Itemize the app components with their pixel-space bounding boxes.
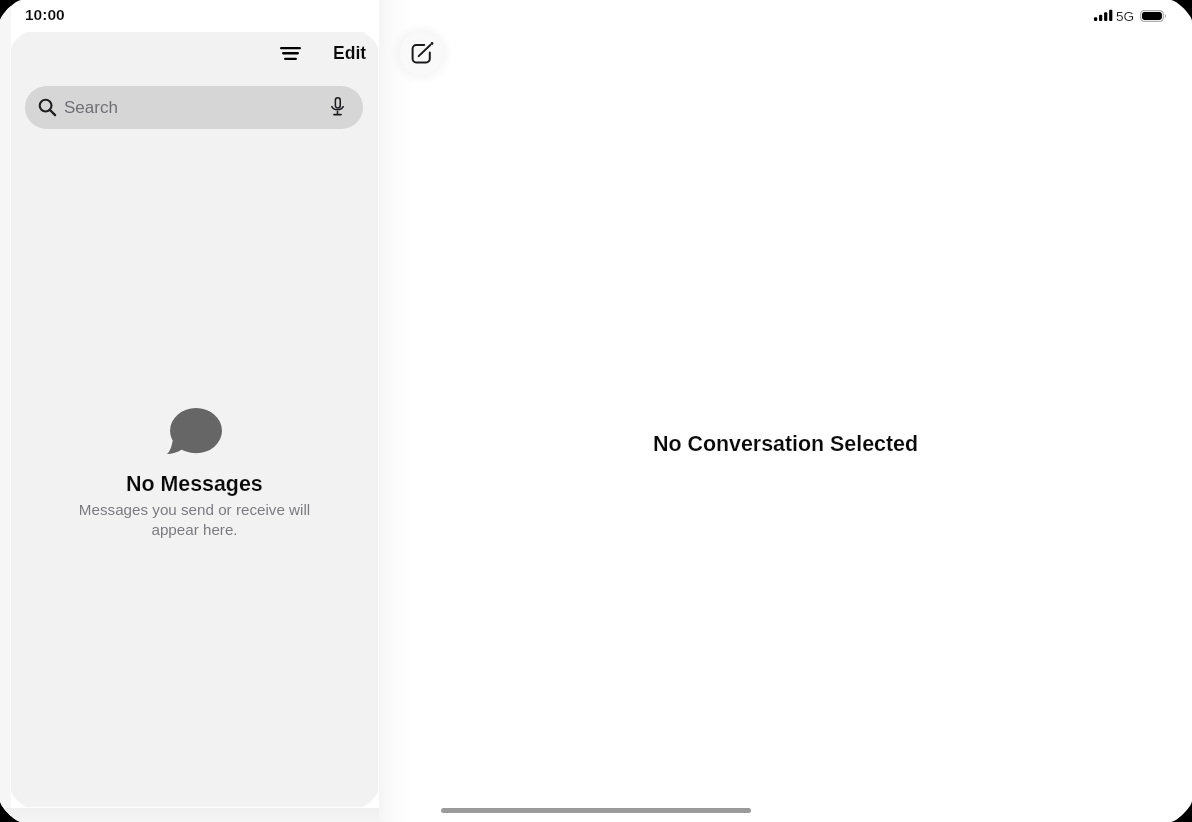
staticText: No Conversation Selected bbox=[653, 432, 919, 456]
button[interactable]: Edit bbox=[320, 37, 378, 69]
button[interactable]: Voice search bbox=[327, 95, 347, 117]
staticText: Search bbox=[64, 98, 118, 117]
button[interactable]: Filter bbox=[270, 37, 311, 69]
staticText: 10:00 bbox=[25, 6, 65, 23]
staticText: Edit bbox=[333, 43, 367, 63]
button[interactable]: Search bbox=[25, 86, 363, 129]
staticText: 5G bbox=[1116, 9, 1135, 24]
staticText: Messages you send or receive will appear… bbox=[72, 501, 317, 538]
staticText: No Messages bbox=[126, 472, 263, 496]
button[interactable]: New message bbox=[400, 32, 443, 75]
